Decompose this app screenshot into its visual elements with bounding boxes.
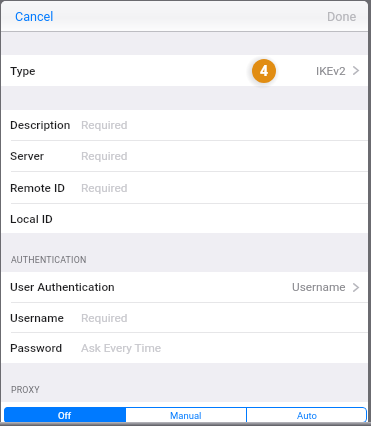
staticText: Remote ID xyxy=(10,181,65,195)
button[interactable]: Step 4 xyxy=(252,59,276,83)
button[interactable]: User Authentication xyxy=(1,272,368,302)
button[interactable]: Auto xyxy=(247,407,367,423)
staticText: Auto xyxy=(297,410,317,421)
button[interactable]: Server xyxy=(1,141,368,171)
staticText: Description xyxy=(10,118,71,132)
staticText: Required xyxy=(81,149,128,163)
staticText: Type xyxy=(10,64,36,78)
button[interactable]: Description xyxy=(1,110,368,140)
staticText: Off xyxy=(58,410,72,421)
button[interactable]: Remote ID xyxy=(1,172,368,203)
staticText: Password xyxy=(10,341,63,355)
button[interactable]: Password xyxy=(1,333,368,363)
staticText: Required xyxy=(81,181,128,195)
staticText: PROXY xyxy=(11,385,40,395)
staticText: 4 xyxy=(260,63,269,79)
staticText: Required xyxy=(81,118,128,132)
button[interactable]: Type xyxy=(1,55,368,86)
staticText: Cancel xyxy=(15,9,54,24)
staticText: Required xyxy=(81,311,128,325)
button[interactable]: Username xyxy=(1,303,368,332)
button[interactable]: Manual xyxy=(126,407,246,423)
button[interactable]: Local ID xyxy=(1,204,368,233)
button[interactable]: Off xyxy=(4,407,125,423)
button[interactable]: Done xyxy=(316,2,368,31)
staticText: AUTHENTICATION xyxy=(11,255,87,265)
staticText: Username xyxy=(10,311,64,325)
staticText: Server xyxy=(10,149,44,163)
button[interactable]: Cancel xyxy=(1,2,68,31)
staticText: Local ID xyxy=(10,212,53,226)
staticText: Ask Every Time xyxy=(81,341,162,355)
staticText: Manual xyxy=(170,410,202,421)
staticText: Done xyxy=(327,9,357,24)
staticText: User Authentication xyxy=(10,280,115,294)
staticText: Username xyxy=(292,280,346,294)
staticText: IKEv2 xyxy=(316,64,346,78)
